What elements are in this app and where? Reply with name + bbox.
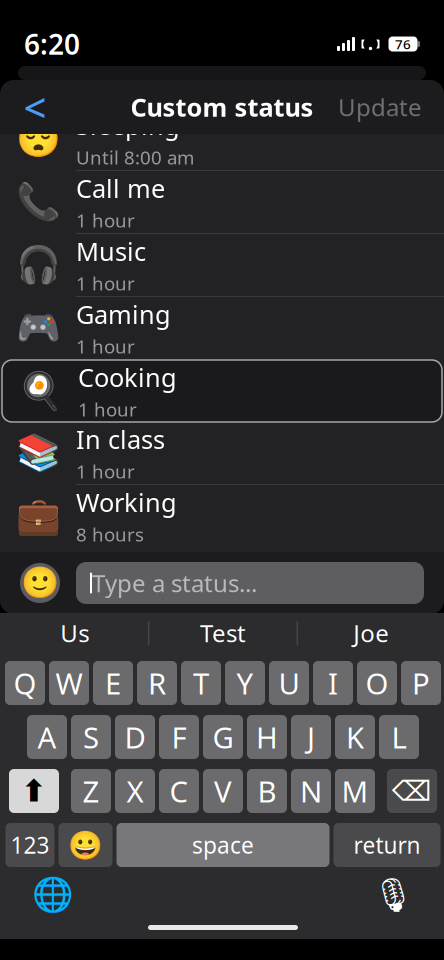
button[interactable]: W (49, 661, 89, 705)
staticText: 🎮 (15, 307, 60, 348)
staticText: 1 hour (76, 334, 135, 359)
staticText: W (55, 663, 82, 702)
button[interactable]: Z (71, 769, 111, 813)
staticText: Joe (353, 617, 389, 649)
button[interactable]: V (203, 769, 243, 813)
staticText: space (192, 830, 254, 860)
staticText: A (37, 717, 56, 756)
staticText: N (300, 771, 322, 810)
button[interactable]: S (71, 715, 111, 759)
button[interactable]: E (93, 661, 133, 705)
button[interactable]: H (247, 715, 287, 759)
button[interactable]: F (159, 715, 199, 759)
button[interactable]: 💼 (0, 485, 444, 548)
button[interactable]: 🎧 (0, 234, 444, 297)
staticText: 8 hours (76, 522, 144, 547)
staticText: 😀 (68, 829, 103, 861)
button[interactable]: 🍳 (0, 360, 444, 422)
button[interactable]: Back (8, 83, 62, 131)
staticText: S (83, 717, 99, 756)
button[interactable]: B (247, 769, 287, 813)
staticText: C (169, 771, 188, 810)
staticText: 🙂 (21, 565, 59, 600)
staticText: 💼 (15, 495, 60, 536)
staticText: Type a status... (92, 567, 257, 599)
button[interactable]: Type a status... (76, 562, 424, 604)
staticText: Gaming (76, 297, 171, 331)
button[interactable]: X (115, 769, 155, 813)
staticText: 6:20 (24, 25, 80, 63)
staticText: 1 hour (76, 459, 135, 484)
staticText: 🍳 (17, 370, 62, 411)
staticText: L (391, 717, 406, 756)
staticText: J (307, 717, 315, 756)
button[interactable]: Update (324, 83, 436, 131)
button[interactable]: Shift (9, 769, 59, 813)
staticText: 123 (10, 830, 49, 860)
staticText: D (124, 717, 145, 756)
staticText: 🎧 (15, 244, 60, 285)
staticText: Sleeping (76, 108, 180, 142)
staticText: V (214, 771, 232, 810)
button[interactable]: return (333, 823, 440, 867)
staticText: U (278, 663, 299, 702)
button[interactable]: J (291, 715, 331, 759)
button[interactable]: R (137, 661, 177, 705)
button[interactable]: C (159, 769, 199, 813)
staticText: F (171, 717, 186, 756)
staticText: 📚 (15, 432, 60, 473)
staticText: In class (76, 422, 165, 456)
button[interactable]: space (116, 823, 329, 867)
staticText: H (256, 717, 278, 756)
button[interactable]: Emoji keyboard (58, 823, 112, 867)
staticText: Call me (76, 171, 165, 205)
button[interactable]: 📚 (0, 422, 444, 485)
button[interactable]: 123 (5, 823, 54, 867)
staticText: Music (76, 234, 146, 268)
staticText: Q (13, 663, 36, 702)
staticText: X (126, 771, 143, 810)
button[interactable]: Y (225, 661, 265, 705)
staticText: 🌐 (32, 876, 74, 914)
staticText: 😴 (15, 118, 60, 159)
button[interactable]: L (379, 715, 419, 759)
button[interactable]: Emoji (20, 563, 60, 603)
staticText: K (346, 717, 364, 756)
staticText: Until 8:00 am (76, 145, 194, 170)
staticText: Z (82, 771, 99, 810)
button[interactable]: O (357, 661, 397, 705)
button[interactable]: A (27, 715, 67, 759)
button[interactable]: Dictation (371, 873, 415, 917)
staticText: return (353, 830, 420, 860)
staticText: < (23, 80, 46, 133)
staticText: B (257, 771, 276, 810)
staticText: O (365, 663, 388, 702)
button[interactable]: N (291, 769, 331, 813)
button[interactable]: I (313, 661, 353, 705)
button[interactable]: Delete (387, 769, 437, 813)
button[interactable]: Q (5, 661, 45, 705)
staticText: 🎙 (372, 876, 414, 914)
staticText: T (193, 663, 209, 702)
button[interactable]: T (181, 661, 221, 705)
button[interactable]: M (335, 769, 375, 813)
button[interactable]: U (269, 661, 309, 705)
staticText: E (105, 663, 121, 702)
button[interactable]: Switch keyboard (31, 873, 75, 917)
button[interactable]: D (115, 715, 155, 759)
button[interactable]: K (335, 715, 375, 759)
staticText: 1 hour (76, 208, 135, 233)
button[interactable]: G (203, 715, 243, 759)
button[interactable]: 😴 (0, 108, 444, 171)
staticText: ⌫ (392, 775, 432, 807)
button[interactable]: Joe (298, 613, 444, 653)
button[interactable]: 📞 (0, 171, 444, 234)
button[interactable]: P (401, 661, 441, 705)
button[interactable]: Test (149, 613, 297, 653)
staticText: Y (236, 663, 253, 702)
staticText: Test (200, 617, 246, 649)
button[interactable]: Us (1, 613, 148, 653)
staticText: M (341, 771, 368, 810)
button[interactable]: 🎮 (0, 297, 444, 360)
staticText: ⬆ (21, 774, 47, 808)
